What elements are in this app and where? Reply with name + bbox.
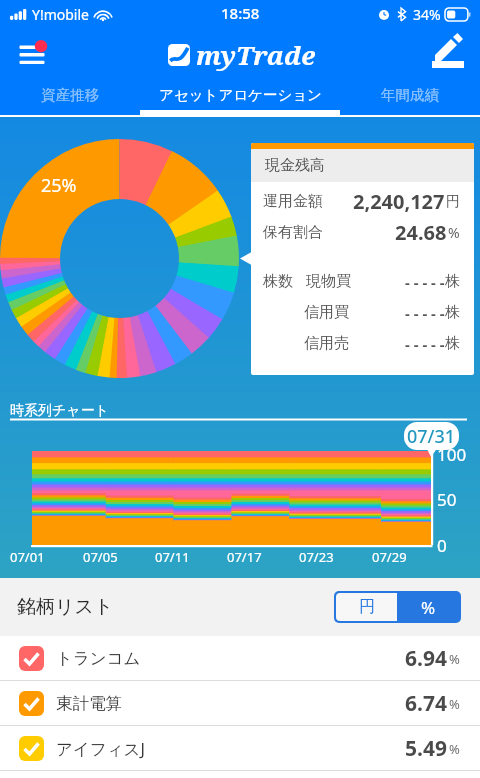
staticText: 6.94	[405, 644, 447, 673]
staticText: アセットアロケーション	[159, 86, 322, 104]
staticText: 07/01	[10, 548, 45, 566]
button[interactable]: Edit	[428, 32, 472, 76]
button[interactable]: %	[397, 593, 459, 621]
staticText: Y!mobile	[32, 5, 89, 24]
staticText: 07/31	[407, 424, 456, 449]
staticText: 07/23	[299, 548, 334, 566]
staticText: 100	[437, 443, 467, 466]
staticText: アイフィスJ	[56, 737, 145, 760]
staticText: 株数	[263, 272, 293, 291]
staticText: 株	[445, 272, 460, 291]
button[interactable]: 年間成績	[340, 80, 480, 115]
staticText: 07/05	[83, 548, 118, 566]
staticText: %	[449, 650, 460, 668]
staticText: 34%	[413, 5, 441, 24]
staticText: 信用売	[304, 334, 349, 353]
staticText: 5.49	[405, 734, 447, 763]
staticText: 07/29	[372, 548, 407, 566]
staticText: 時系列チャート	[10, 402, 109, 420]
staticText: 50	[437, 488, 457, 511]
staticText: - - - - -	[405, 303, 445, 323]
staticText: 2,240,127	[353, 188, 445, 215]
staticText: %	[448, 223, 460, 242]
staticText: 資産推移	[41, 86, 99, 104]
staticText: 年間成績	[381, 86, 439, 104]
staticText: - - - - -	[405, 334, 445, 354]
button[interactable]: トランコム	[0, 636, 480, 681]
staticText: 07/17	[227, 548, 262, 566]
staticText: 現金残高	[265, 156, 325, 175]
staticText: %	[449, 740, 460, 758]
staticText: 株	[445, 334, 460, 353]
staticText: 株	[445, 303, 460, 322]
staticText: 25%	[41, 173, 77, 198]
button[interactable]: 東計電算	[0, 681, 480, 726]
staticText: 現物買	[306, 272, 351, 291]
staticText: トランコム	[56, 648, 141, 669]
button[interactable]: Yen	[336, 593, 397, 621]
staticText: 円	[359, 597, 375, 617]
staticText: 6.74	[405, 689, 447, 718]
staticText: 円	[446, 193, 460, 211]
staticText: 18:58	[221, 3, 260, 23]
button[interactable]: アセットアロケーション	[140, 80, 340, 115]
staticText: 東計電算	[56, 693, 122, 714]
button[interactable]: 資産推移	[0, 80, 140, 115]
staticText: %	[421, 596, 436, 619]
button[interactable]: Menu	[13, 35, 51, 73]
staticText: 運用金額	[263, 192, 323, 211]
button[interactable]: アイフィスJ	[0, 726, 480, 771]
staticText: %	[449, 695, 460, 713]
staticText: 0	[437, 534, 447, 557]
staticText: 信用買	[304, 303, 349, 322]
staticText: 保有割合	[263, 223, 323, 242]
staticText: 銘柄リスト	[17, 595, 114, 619]
staticText: 07/11	[155, 548, 190, 566]
staticText: myTrade	[196, 37, 316, 72]
staticText: 24.68	[395, 219, 447, 246]
staticText: - - - - -	[405, 272, 445, 292]
